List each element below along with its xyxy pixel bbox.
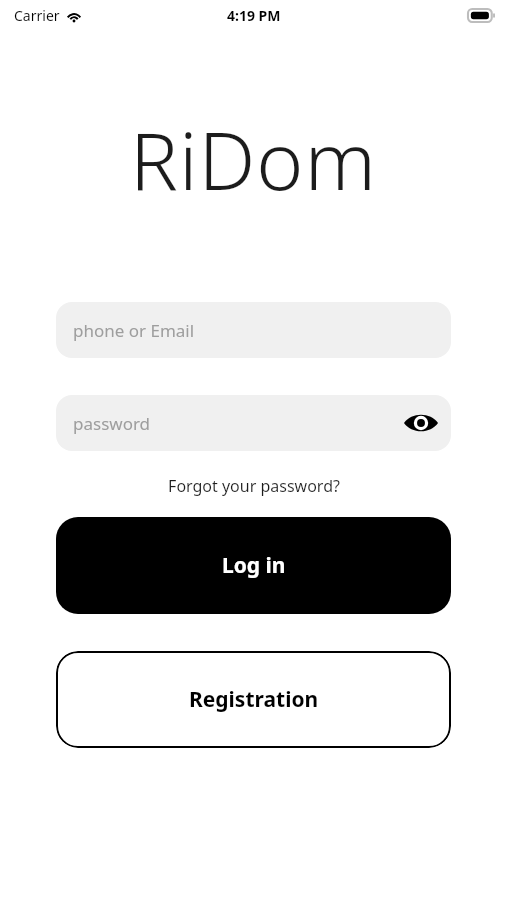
button[interactable]: Registration	[56, 651, 451, 748]
staticText: Forgot your password?	[168, 475, 340, 497]
staticText: password	[73, 412, 151, 435]
staticText: Registration	[189, 685, 319, 714]
staticText: 4:19 PM	[227, 6, 281, 25]
button[interactable]: Forgot your password?	[160, 471, 348, 501]
button[interactable]: password	[56, 395, 451, 451]
button[interactable]: Log in	[56, 517, 451, 614]
staticText: RiDom	[130, 104, 377, 213]
staticText: Carrier	[14, 6, 60, 25]
staticText: phone or Email	[73, 319, 195, 342]
button[interactable]: phone or Email	[56, 302, 451, 358]
staticText: Log in	[222, 551, 286, 580]
button[interactable]: Show password	[399, 401, 443, 445]
